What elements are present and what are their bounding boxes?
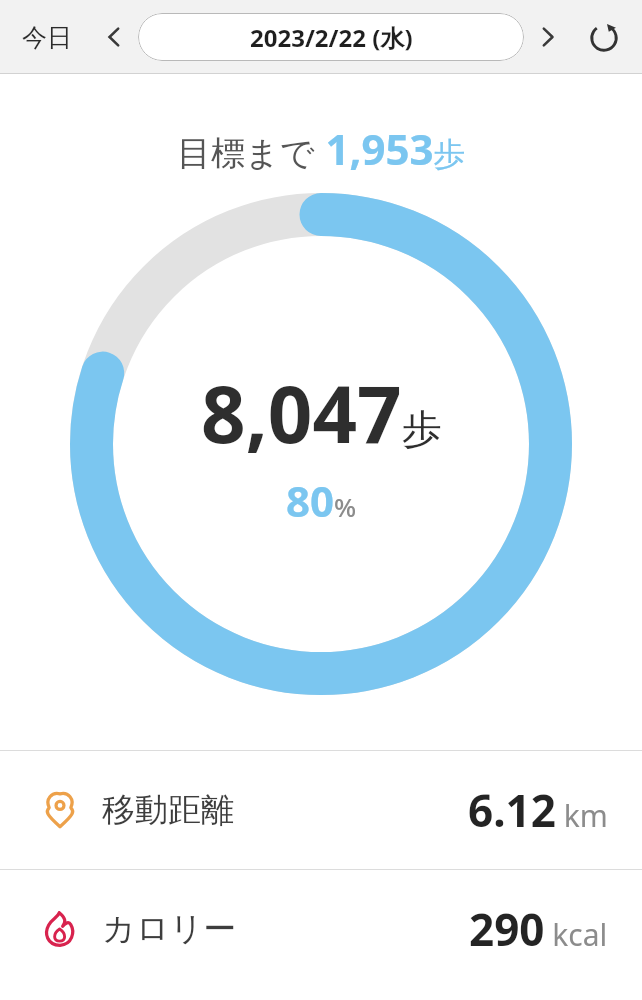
button[interactable]: 今日 xyxy=(10,14,84,61)
other: Distance xyxy=(40,790,80,830)
button[interactable]: Previous day xyxy=(92,15,136,59)
button[interactable]: Calories xyxy=(0,870,642,988)
button[interactable]: Next day xyxy=(526,15,570,59)
other: Calories xyxy=(40,909,80,949)
staticText: 2023/2/22 (水) xyxy=(250,21,413,54)
staticText: 移動距離 xyxy=(102,789,234,831)
staticText: 80% xyxy=(286,472,357,529)
staticText: 8,047歩 xyxy=(201,360,442,466)
staticText: 目標まで 1,953歩 xyxy=(177,120,466,177)
button[interactable]: Refresh xyxy=(578,11,630,63)
staticText: 290 kcal xyxy=(469,899,608,959)
staticText: 6.12 km xyxy=(468,780,608,840)
staticText: 今日 xyxy=(22,22,72,53)
button[interactable]: 2023/2/22 (水) xyxy=(138,13,524,61)
button[interactable]: Distance xyxy=(0,751,642,869)
staticText: カロリー xyxy=(102,908,237,950)
